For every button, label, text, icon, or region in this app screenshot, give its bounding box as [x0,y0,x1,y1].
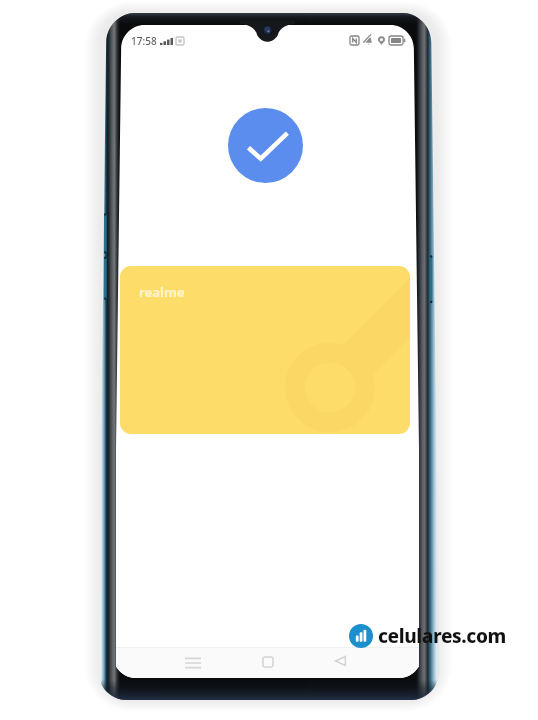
staticText: celulares.com [378,623,506,649]
button[interactable]: realme [120,266,410,434]
staticText: realme [139,283,185,301]
button[interactable]: Back [335,656,346,666]
button[interactable]: Success [228,108,303,183]
button[interactable]: celulares.com [349,623,506,649]
staticText: 17:58 [131,34,157,48]
button[interactable]: Recents [185,656,201,668]
button[interactable]: Home [263,657,273,667]
